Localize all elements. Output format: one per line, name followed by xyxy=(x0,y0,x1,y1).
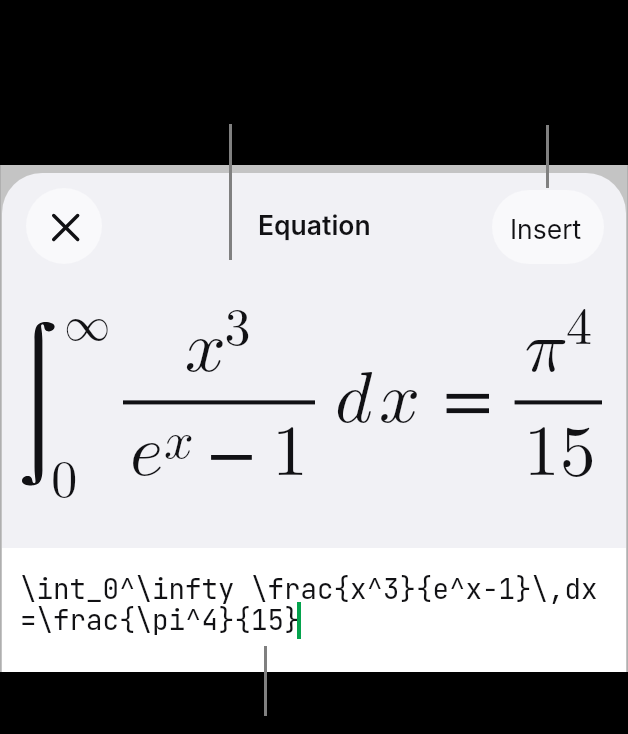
button[interactable]: Insert xyxy=(492,190,604,264)
staticText: Equation xyxy=(258,209,371,241)
staticText: \int_0^\infty \frac{x^3}{e^x−1}\,dx =\fr… xyxy=(20,571,598,639)
button[interactable]: Close xyxy=(26,188,102,264)
staticText: Insert xyxy=(510,213,582,245)
